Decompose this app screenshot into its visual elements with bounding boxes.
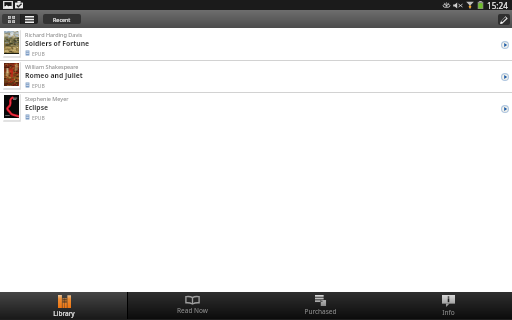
staticText: Richard Harding Davis: [25, 31, 83, 38]
staticText: Stephenie Meyer: [25, 95, 69, 102]
staticText: Soldiers of Fortune: [25, 39, 90, 48]
staticText: Eclipse: [25, 103, 49, 112]
button[interactable]: Info: [384, 292, 512, 320]
button[interactable]: Purchased: [256, 292, 384, 320]
button[interactable]: Grid view: [2, 14, 20, 24]
staticText: Romeo and Juliet: [25, 71, 83, 80]
button[interactable]: List view: [21, 14, 38, 24]
button[interactable]: Edit: [498, 14, 510, 25]
button[interactable]: Read: [496, 34, 512, 56]
button[interactable]: Stephenie Meyer: [0, 93, 512, 124]
button[interactable]: Read Now: [128, 292, 256, 320]
button[interactable]: Richard Harding Davis: [0, 29, 512, 60]
staticText: Read Now: [177, 306, 208, 315]
staticText: EPUB: [32, 83, 45, 90]
staticText: EPUB: [32, 51, 45, 58]
button[interactable]: Library: [0, 292, 128, 320]
staticText: William Shakespeare: [25, 63, 79, 70]
staticText: 15:24: [487, 0, 508, 10]
staticText: EPUB: [32, 115, 45, 122]
staticText: Info: [442, 308, 455, 317]
staticText: Recent: [53, 16, 71, 23]
staticText: Purchased: [304, 307, 337, 316]
button[interactable]: Recent: [43, 14, 81, 24]
button[interactable]: Read: [496, 98, 512, 120]
button[interactable]: Read: [496, 66, 512, 88]
staticText: Library: [53, 309, 75, 318]
button[interactable]: William Shakespeare: [0, 61, 512, 92]
